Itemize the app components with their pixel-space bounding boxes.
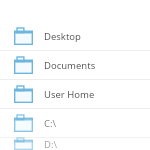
button[interactable]: Documents: [0, 51, 150, 79]
other: Places list: [0, 0, 150, 150]
button[interactable]: C:\: [0, 109, 150, 137]
staticText: D:\: [44, 138, 58, 150]
staticText: Desktop: [44, 30, 81, 43]
button[interactable]: D:\: [0, 138, 150, 150]
staticText: Documents: [44, 59, 96, 72]
staticText: User Home: [44, 88, 95, 101]
button[interactable]: Desktop: [0, 22, 150, 50]
staticText: C:\: [44, 117, 57, 130]
button[interactable]: User Home: [0, 80, 150, 108]
